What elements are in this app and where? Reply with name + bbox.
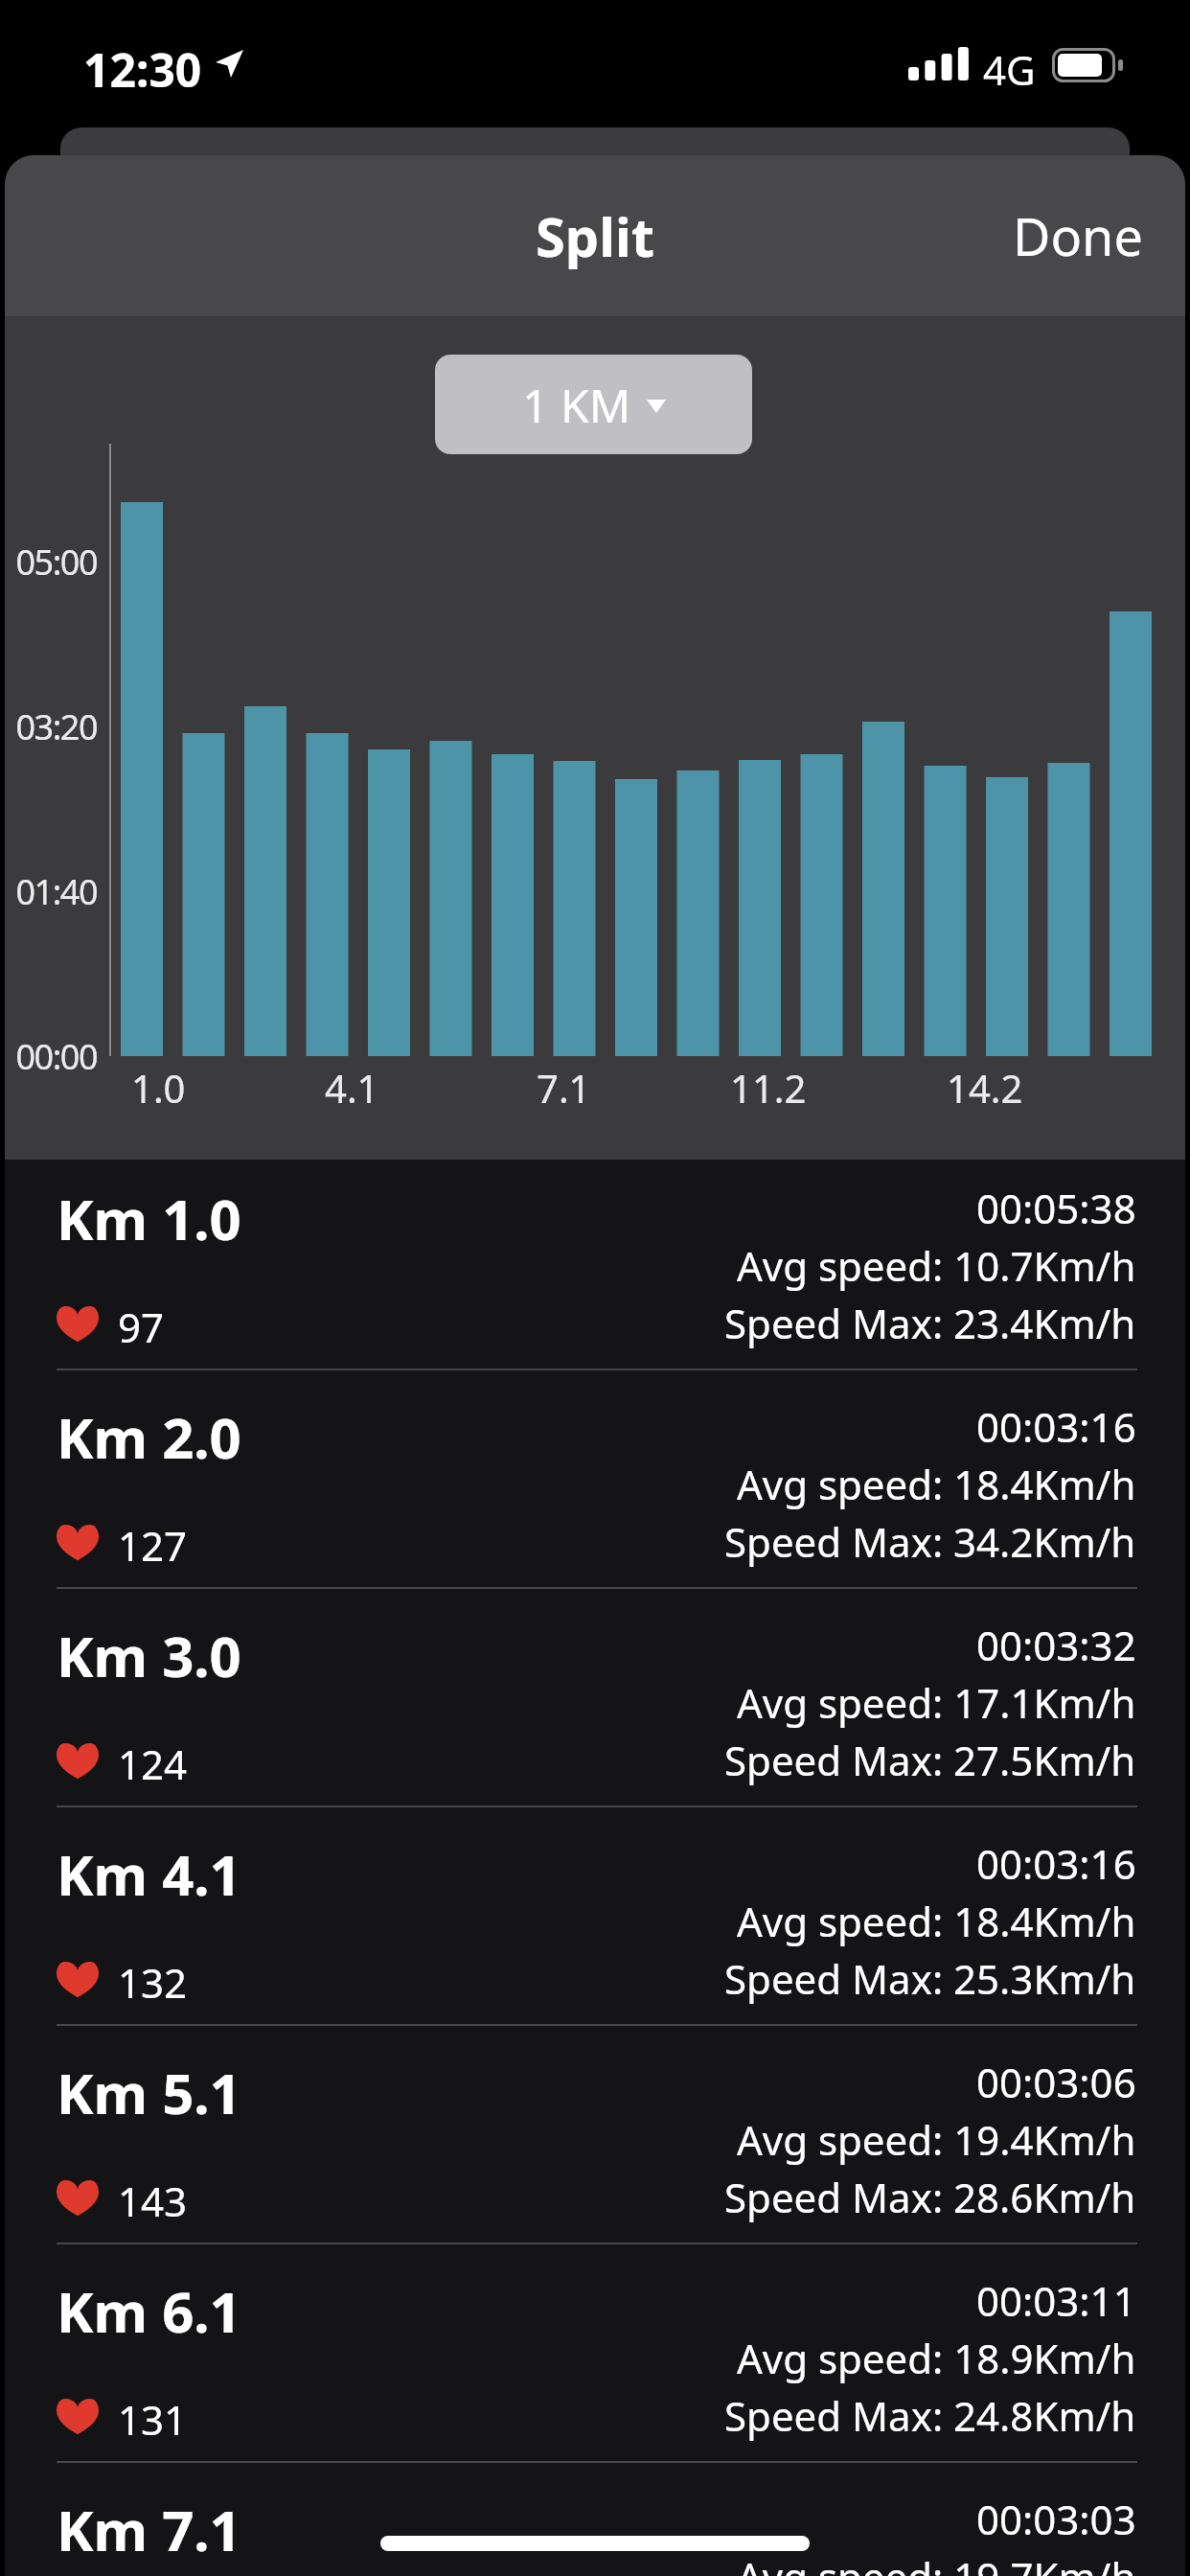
staticText: 03:20 [15,703,97,750]
button[interactable]: Done [1013,200,1143,271]
staticText: 00:03:16 [976,1399,1136,1454]
staticText: Km 3.0 [57,1618,241,1693]
staticText: 01:40 [15,868,97,915]
staticText: Avg speed: 18.4Km/h [737,1457,1136,1511]
button[interactable]: Km 7.1 [5,2463,1185,2576]
button[interactable]: Km 3.0 [5,1589,1185,1807]
staticText: 12:30 [83,38,202,101]
staticText: Km 5.1 [57,2055,241,2130]
staticText: Km 6.1 [57,2273,241,2349]
staticText: 00:03:11 [976,2273,1136,2328]
staticText: 00:00 [15,1033,97,1080]
staticText: 131 [118,2392,188,2447]
staticText: Km 7.1 [57,2492,241,2567]
staticText: Speed Max: 34.2Km/h [724,1514,1136,1569]
staticText: 97 [118,1299,165,1354]
staticText: Speed Max: 27.5Km/h [724,1733,1136,1787]
staticText: 14.2 [947,1062,1023,1114]
button[interactable]: 1 KM [435,355,752,454]
staticText: 7.1 [537,1062,591,1114]
staticText: Avg speed: 18.4Km/h [737,1894,1136,1948]
staticText: Avg speed: 10.7Km/h [737,1238,1136,1293]
button[interactable]: Km 4.1 [5,1807,1185,2026]
button[interactable]: Km 2.0 [5,1370,1185,1589]
staticText: 00:03:32 [976,1618,1136,1672]
staticText: 4.1 [325,1062,379,1114]
staticText: Speed Max: 25.3Km/h [724,1951,1136,2006]
staticText: Done [1013,200,1143,271]
staticText: Km 4.1 [57,1836,241,1912]
staticText: 1 KM [522,374,631,436]
staticText: 143 [118,2173,188,2228]
staticText: Avg speed: 18.9Km/h [737,2331,1136,2385]
staticText: Km 1.0 [57,1181,241,1256]
button[interactable]: Km 1.0 [5,1152,1185,1370]
button[interactable]: Km 5.1 [5,2026,1185,2244]
staticText: Avg speed: 19.7Km/h [737,2549,1136,2576]
staticText: Avg speed: 17.1Km/h [737,1675,1136,1730]
staticText: 00:03:16 [976,1836,1136,1891]
staticText: Split [536,199,654,272]
staticText: 1.0 [131,1062,186,1114]
staticText: Speed Max: 23.4Km/h [724,1296,1136,1350]
staticText: 124 [118,1736,188,1791]
staticText: 11.2 [730,1062,807,1114]
staticText: Speed Max: 28.6Km/h [724,2170,1136,2224]
staticText: Avg speed: 19.4Km/h [737,2112,1136,2167]
staticText: Speed Max: 24.8Km/h [724,2388,1136,2443]
staticText: 4G [983,42,1036,97]
staticText: 00:05:38 [976,1181,1136,1235]
staticText: 132 [118,1955,188,2010]
staticText: 05:00 [15,539,97,586]
staticText: 00:03:06 [976,2055,1136,2109]
staticText: 00:03:03 [976,2492,1136,2546]
button[interactable]: Km 6.1 [5,2244,1185,2463]
staticText: Km 2.0 [57,1399,241,1475]
staticText: 127 [118,1518,188,1573]
